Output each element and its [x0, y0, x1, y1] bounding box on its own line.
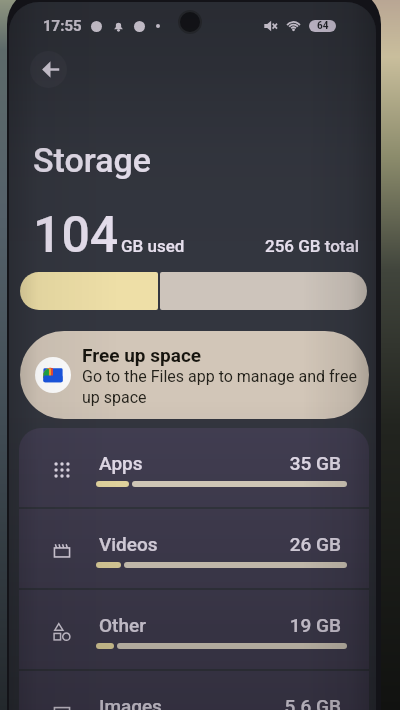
staticText: GB used	[121, 236, 185, 256]
staticText: 5.6 GB	[19, 695, 341, 710]
staticText: 19 GB	[19, 614, 341, 636]
staticText: 17:55	[43, 17, 82, 35]
staticText: 64	[317, 20, 329, 32]
staticText: Other	[99, 614, 146, 636]
button[interactable]: Other	[19, 590, 369, 669]
staticText: Videos	[99, 533, 158, 555]
button[interactable]: Free up space	[20, 331, 369, 419]
staticText: 35 GB	[19, 452, 341, 474]
staticText: Apps	[99, 452, 143, 474]
button[interactable]: Apps	[19, 428, 369, 507]
staticText: 104	[33, 206, 119, 265]
button[interactable]: Videos	[19, 509, 369, 588]
staticText: Go to the Files app to manage and free u…	[82, 367, 363, 407]
staticText: Storage	[33, 140, 152, 180]
staticText: Images	[99, 695, 162, 710]
staticText: 256 GB total	[265, 236, 360, 256]
button[interactable]: Images	[19, 671, 369, 710]
staticText: 26 GB	[19, 533, 341, 555]
staticText: Free up space	[82, 344, 202, 366]
button[interactable]: Back	[30, 51, 67, 88]
